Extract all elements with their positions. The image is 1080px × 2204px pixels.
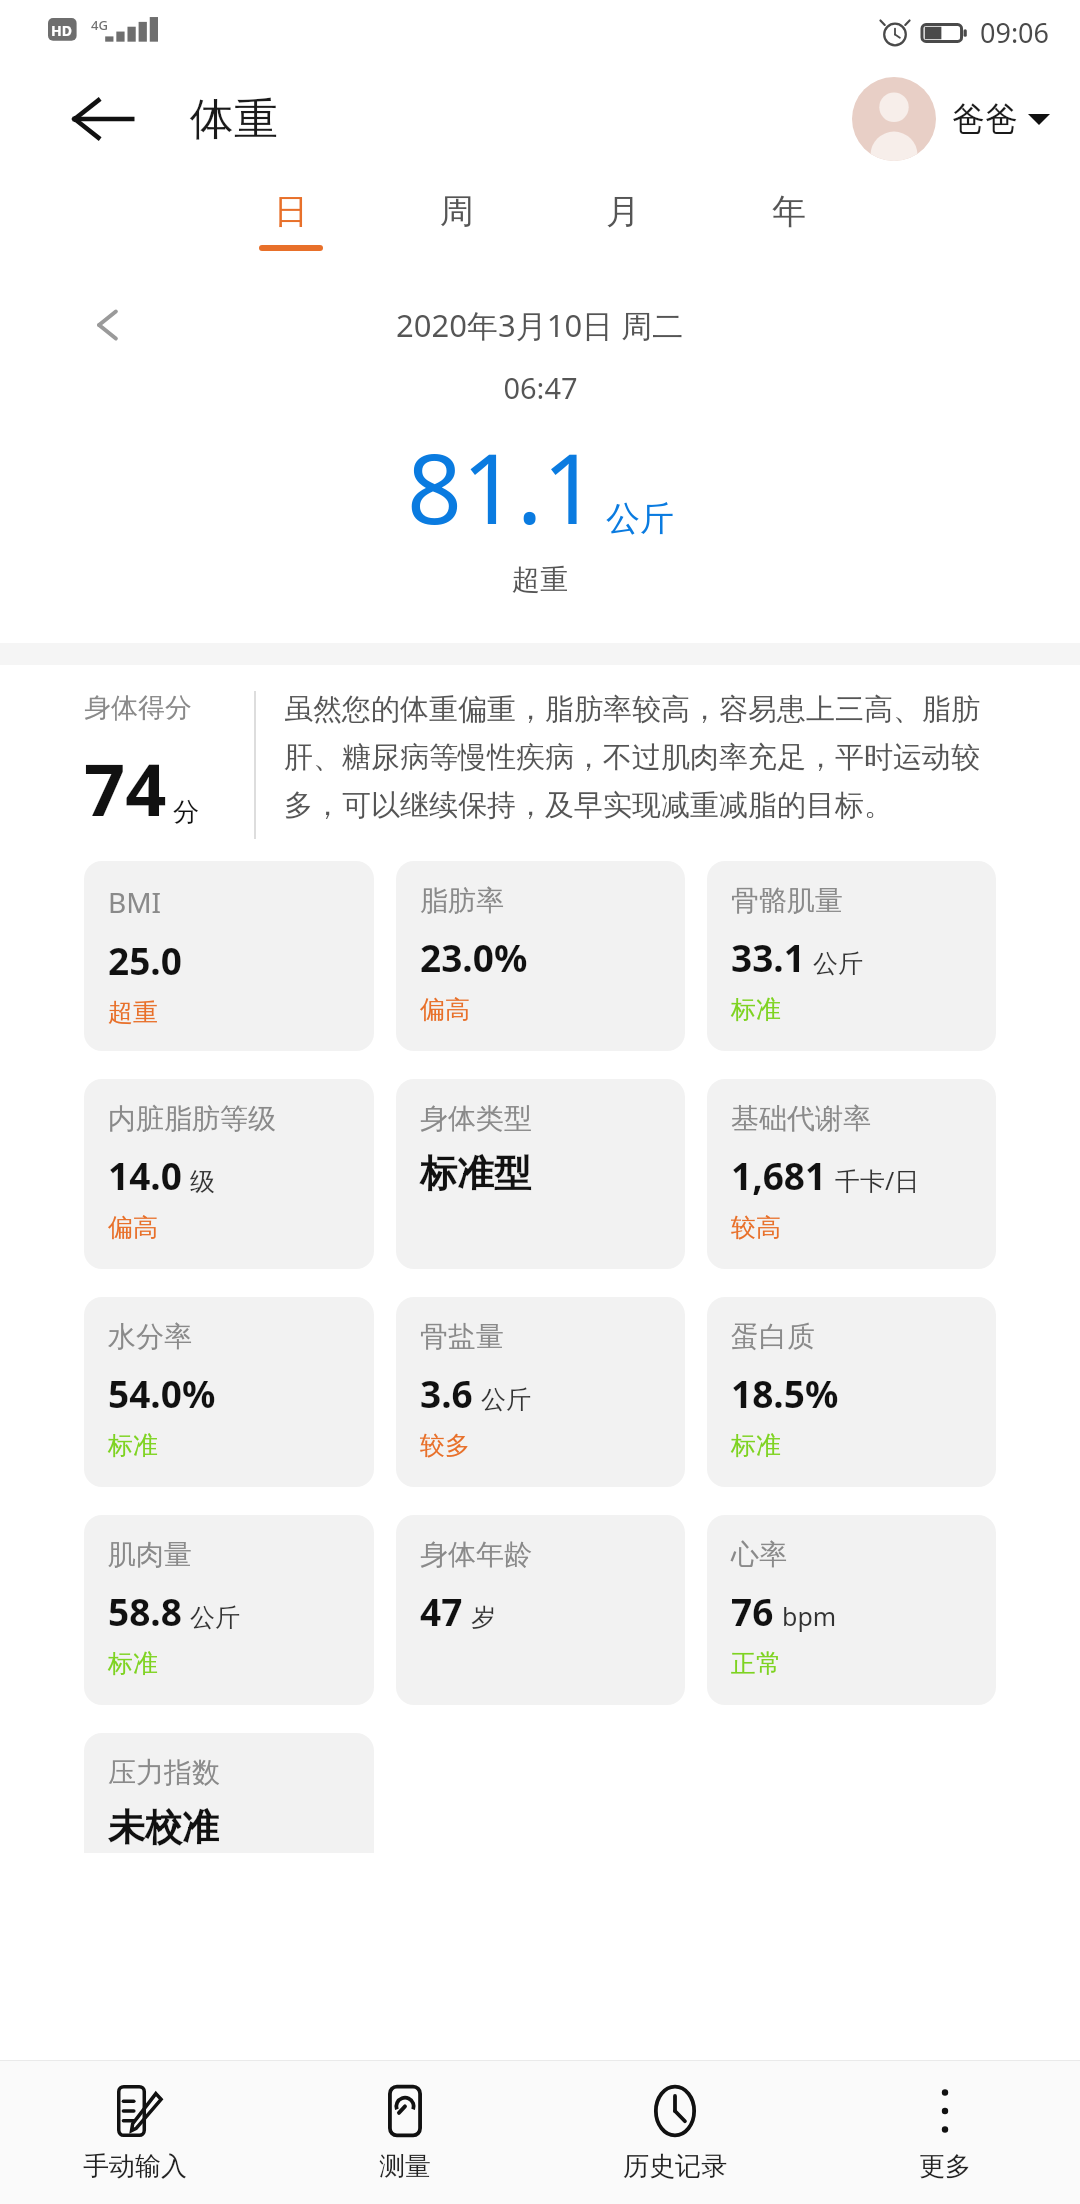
staticText: 骨盐量 bbox=[420, 1319, 504, 1354]
button[interactable]: Back bbox=[66, 83, 138, 155]
staticText: 级 bbox=[190, 1166, 215, 1197]
button[interactable]: 年 bbox=[753, 174, 825, 245]
staticText: 脂肪率 bbox=[420, 883, 504, 918]
staticText: 23.0% bbox=[420, 932, 528, 982]
staticText: 分 bbox=[173, 796, 199, 829]
staticText: 标准 bbox=[731, 994, 781, 1025]
staticText: HD bbox=[51, 21, 72, 40]
button[interactable]: 身体类型 bbox=[396, 1079, 685, 1269]
staticText: 标准 bbox=[731, 1430, 781, 1461]
staticText: 76 bbox=[731, 1586, 774, 1636]
staticText: 公斤 bbox=[606, 497, 674, 540]
button[interactable]: 手动输入 bbox=[0, 2061, 270, 2204]
staticText: 25.0 bbox=[108, 935, 182, 985]
staticText: 未校准 bbox=[108, 1804, 219, 1851]
staticText: 手动输入 bbox=[83, 2150, 187, 2183]
button[interactable]: 月 bbox=[587, 174, 659, 245]
staticText: 历史记录 bbox=[623, 2150, 727, 2183]
staticText: 岁 bbox=[471, 1602, 496, 1633]
staticText: 水分率 bbox=[108, 1319, 192, 1354]
button[interactable]: 历史记录 bbox=[540, 2061, 810, 2204]
button[interactable]: 脂肪率 bbox=[396, 861, 685, 1051]
staticText: 较多 bbox=[420, 1430, 470, 1461]
staticText: 心率 bbox=[731, 1537, 787, 1572]
staticText: 58.8 bbox=[108, 1586, 182, 1636]
staticText: 骨骼肌量 bbox=[731, 883, 843, 918]
staticText: 74 bbox=[84, 739, 167, 837]
button[interactable]: 水分率 bbox=[84, 1297, 374, 1487]
staticText: BMI bbox=[108, 883, 162, 921]
staticText: 06:47 bbox=[503, 368, 578, 407]
staticText: 压力指数 bbox=[108, 1755, 220, 1790]
staticText: 年 bbox=[772, 190, 806, 233]
staticText: 标准 bbox=[108, 1430, 158, 1461]
staticText: 4G bbox=[91, 16, 108, 34]
staticText: 超重 bbox=[108, 997, 158, 1028]
staticText: 身体类型 bbox=[420, 1101, 532, 1136]
button[interactable]: 基础代谢率 bbox=[707, 1079, 996, 1269]
staticText: 身体年龄 bbox=[420, 1537, 532, 1572]
staticText: 3.6 bbox=[420, 1368, 473, 1418]
staticText: 体重 bbox=[190, 92, 278, 147]
button[interactable]: 更多 bbox=[810, 2061, 1080, 2204]
staticText: 超重 bbox=[512, 562, 568, 597]
staticText: 日 bbox=[274, 190, 308, 233]
button[interactable]: 骨骼肌量 bbox=[707, 861, 996, 1051]
staticText: 33.1 bbox=[731, 932, 805, 982]
staticText: 较高 bbox=[731, 1212, 781, 1243]
button[interactable]: 周 bbox=[421, 174, 493, 245]
staticText: 2020年3月10日 周二 bbox=[396, 304, 684, 346]
staticText: 更多 bbox=[919, 2150, 971, 2183]
button[interactable]: BMI bbox=[84, 861, 374, 1051]
button[interactable]: 蛋白质 bbox=[707, 1297, 996, 1487]
staticText: 54.0% bbox=[108, 1368, 216, 1418]
staticText: 18.5% bbox=[731, 1368, 839, 1418]
staticText: 偏高 bbox=[108, 1212, 158, 1243]
staticText: 09:06 bbox=[980, 14, 1050, 51]
button[interactable]: 内脏脂肪等级 bbox=[84, 1079, 374, 1269]
staticText: 身体得分 bbox=[84, 691, 192, 725]
staticText: 周 bbox=[440, 190, 474, 233]
staticText: 测量 bbox=[379, 2150, 431, 2183]
button[interactable]: 爸爸 bbox=[852, 77, 1050, 161]
staticText: 公斤 bbox=[481, 1384, 531, 1415]
staticText: 肌肉量 bbox=[108, 1537, 192, 1572]
button[interactable]: 肌肉量 bbox=[84, 1515, 374, 1705]
staticText: 47 bbox=[420, 1586, 463, 1636]
staticText: 爸爸 bbox=[952, 98, 1018, 140]
staticText: 81.1 bbox=[407, 421, 598, 552]
staticText: 内脏脂肪等级 bbox=[108, 1101, 276, 1136]
staticText: 月 bbox=[606, 190, 640, 233]
button[interactable]: 骨盐量 bbox=[396, 1297, 685, 1487]
button[interactable]: 心率 bbox=[707, 1515, 996, 1705]
staticText: 蛋白质 bbox=[731, 1319, 815, 1354]
staticText: bpm bbox=[782, 1599, 837, 1633]
staticText: 千卡/日 bbox=[835, 1163, 920, 1197]
staticText: 基础代谢率 bbox=[731, 1101, 871, 1136]
staticText: 标准 bbox=[108, 1648, 158, 1679]
button[interactable]: 日 bbox=[255, 174, 327, 251]
button[interactable]: Previous day bbox=[80, 297, 136, 353]
staticText: 正常 bbox=[731, 1648, 781, 1679]
button[interactable]: 压力指数 bbox=[84, 1733, 374, 1853]
staticText: 公斤 bbox=[190, 1602, 240, 1633]
staticText: 标准型 bbox=[420, 1150, 531, 1197]
button[interactable]: 测量 bbox=[270, 2061, 540, 2204]
button[interactable]: 身体年龄 bbox=[396, 1515, 685, 1705]
staticText: 14.0 bbox=[108, 1150, 182, 1200]
staticText: 公斤 bbox=[813, 948, 863, 979]
staticText: 1,681 bbox=[731, 1150, 827, 1200]
staticText: 偏高 bbox=[420, 994, 470, 1025]
staticText: 虽然您的体重偏重，脂肪率较高，容易患上三高、脂肪肝、糖尿病等慢性疾病，不过肌肉率… bbox=[284, 691, 1024, 823]
